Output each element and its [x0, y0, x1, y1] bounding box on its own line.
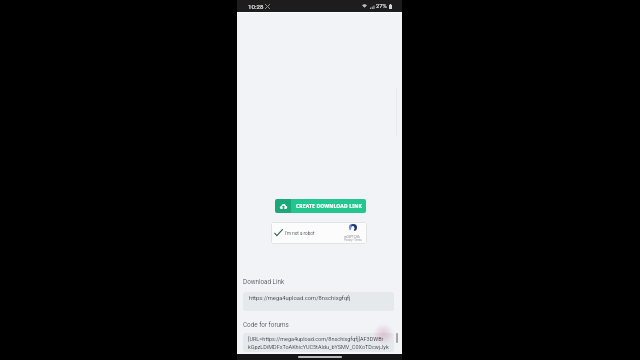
staticText: 27% [376, 3, 387, 10]
button[interactable]: CREATE DOWNLOAD LINK [275, 199, 366, 213]
staticText: Privacy - Terms [344, 239, 362, 242]
staticText: CREATE DOWNLOAD LINK [296, 203, 362, 210]
staticText: Code for forums [243, 321, 289, 328]
staticText: reCAPTCHA [344, 235, 360, 238]
staticText: https://mega4upload.com/8nschixgfqfj [249, 295, 351, 302]
button[interactable]: [URL=https://mega4upload.com/8nschixgfqf… [243, 333, 394, 352]
staticText: 10:28 [248, 3, 264, 10]
staticText: Download Link [243, 278, 285, 285]
staticText: [URL=https://mega4upload.com/8nschixgfqf… [248, 336, 389, 350]
button[interactable]: https://mega4upload.com/8nschixgfqfj [243, 292, 394, 311]
button[interactable]: I'm not a robot [271, 222, 367, 244]
staticText: I'm not a robot [285, 231, 315, 236]
